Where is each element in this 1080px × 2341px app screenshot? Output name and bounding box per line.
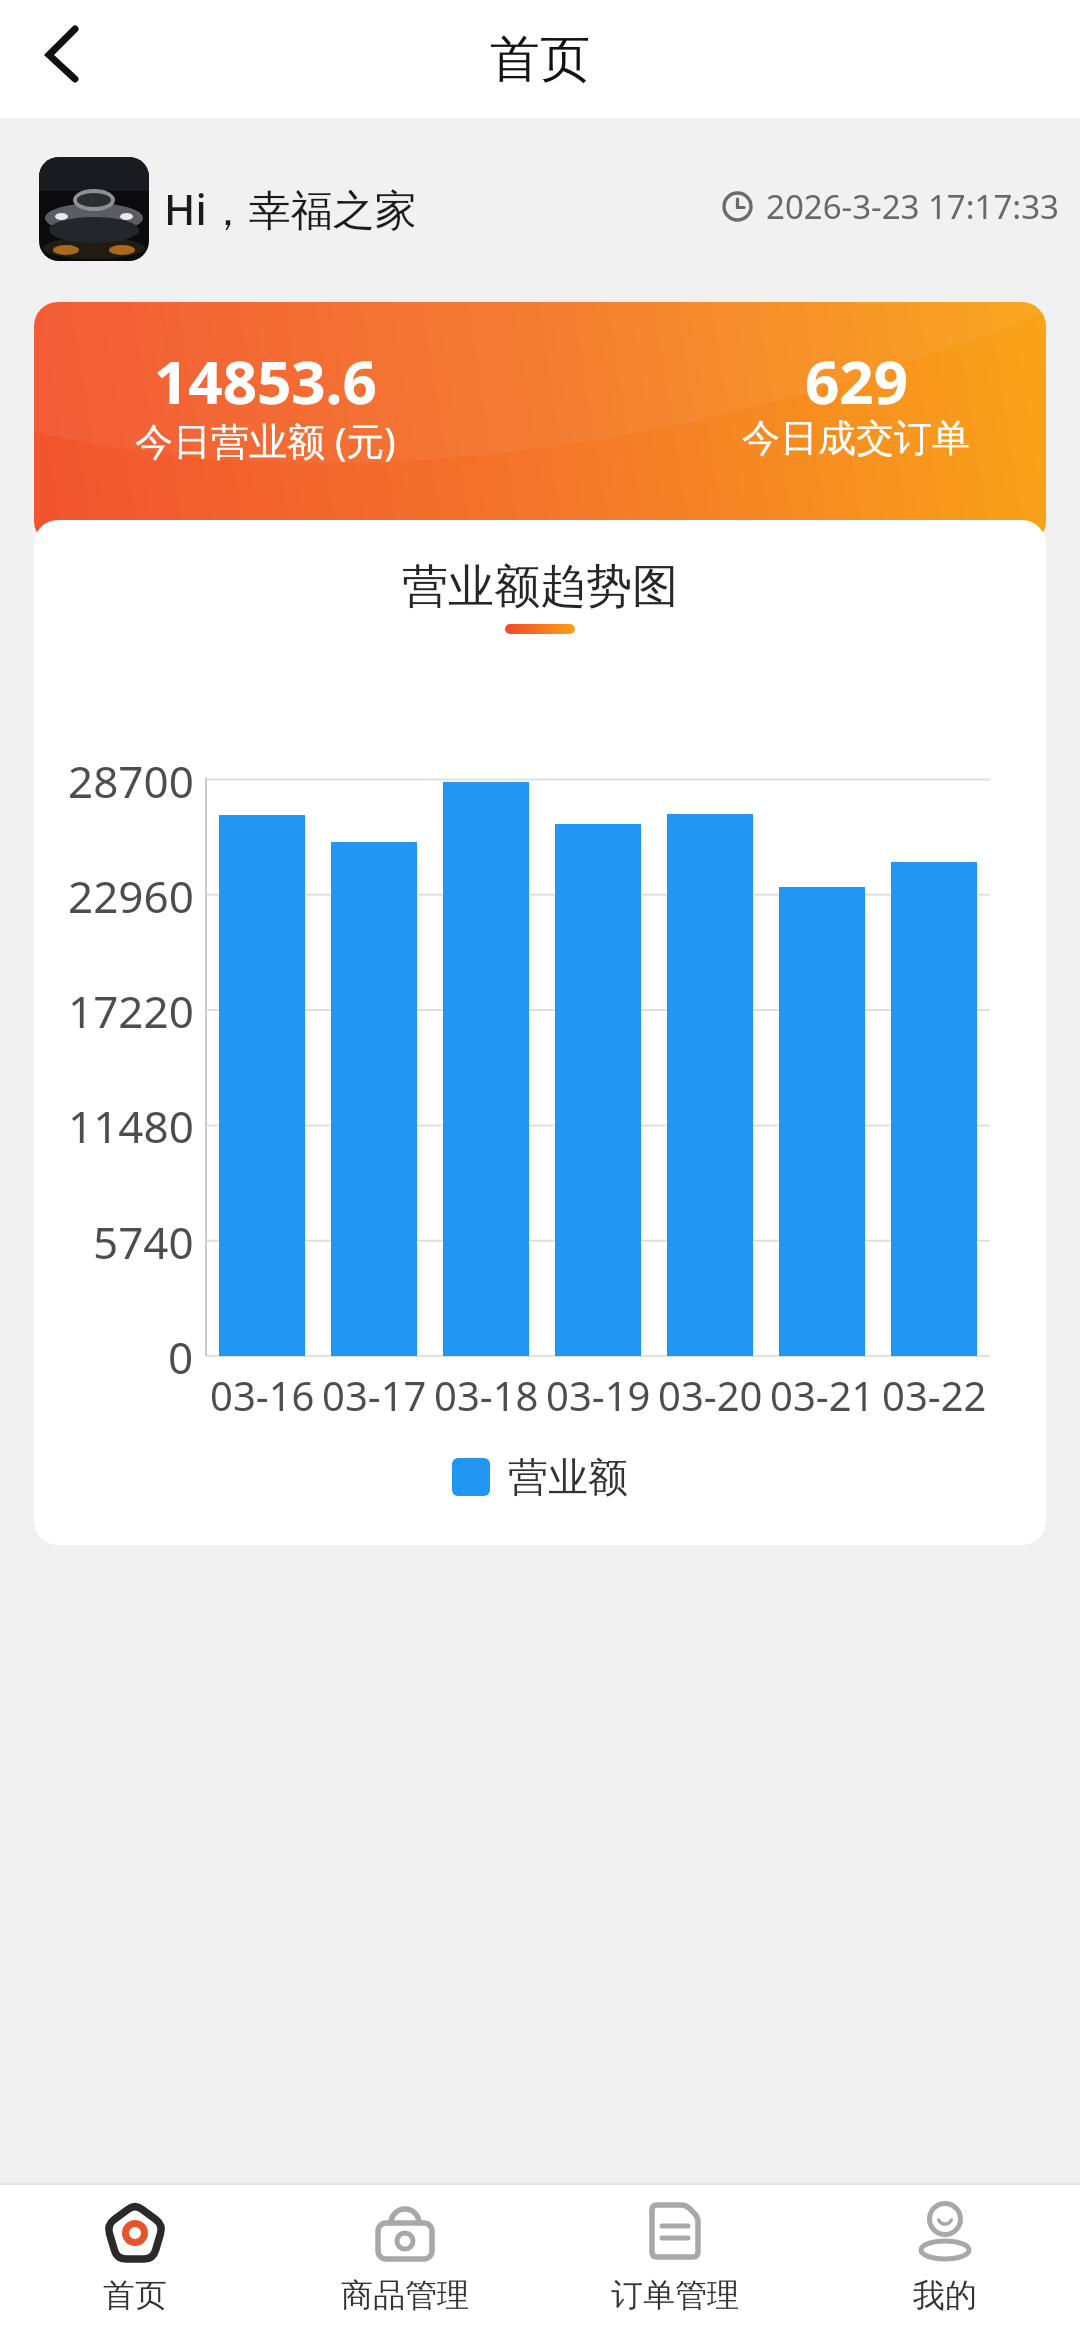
staticText: 营业额趋势图 [402,558,678,616]
button[interactable]: 首页 [0,2183,270,2341]
staticText: 17220 [68,981,194,1039]
staticText: 03-18 [434,1368,539,1420]
staticText: 2026-3-23 17:17:33 [766,184,1059,229]
staticText: 03-20 [658,1368,763,1420]
button[interactable]: 订单管理 [540,2183,810,2341]
staticText: 22960 [68,866,194,924]
button[interactable] [20,4,104,104]
staticText: 11480 [68,1096,194,1154]
staticText: 03-21 [770,1368,875,1420]
staticText: 今日成交订单 [742,414,970,462]
staticText: 首页 [103,2275,167,2315]
button[interactable]: 商品管理 [270,2183,540,2341]
staticText: 营业额 [508,1452,628,1502]
staticText: 商品管理 [341,2275,469,2315]
button[interactable]: 我的 [810,2183,1080,2341]
staticText: 03-16 [210,1368,315,1420]
staticText: 我的 [913,2275,977,2315]
staticText: 03-22 [882,1368,987,1420]
staticText: 03-19 [546,1368,651,1420]
staticText: 03-17 [322,1368,427,1420]
staticText: 629 [805,340,908,422]
staticText: 5740 [93,1212,194,1270]
staticText: 14853.6 [154,340,377,422]
staticText: 首页 [490,28,590,91]
staticText: Hi，幸福之家 [164,180,417,237]
staticText: 0 [168,1327,194,1385]
staticText: 订单管理 [611,2275,739,2315]
staticText: 28700 [68,751,194,809]
button[interactable]: 14853.6 [34,302,1046,545]
staticText: 今日营业额 (元) [135,414,396,466]
